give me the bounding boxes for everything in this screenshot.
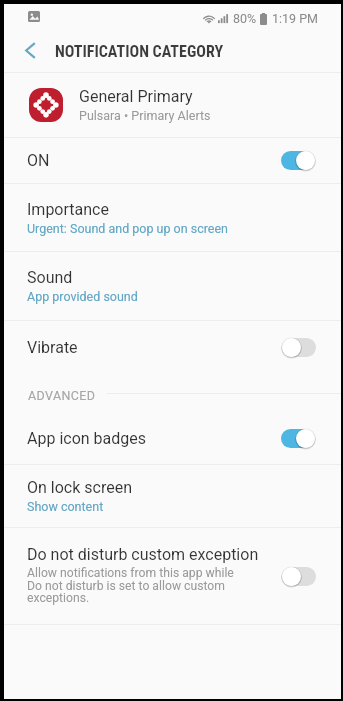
staticText: App icon badges <box>27 429 147 448</box>
staticText: Allow notifications from this app while … <box>27 566 234 605</box>
staticText: Sound <box>27 268 73 287</box>
button[interactable]: ON <box>4 138 341 183</box>
staticText: Pulsara • Primary Alerts <box>79 108 211 123</box>
staticText: Show content <box>27 499 104 514</box>
button[interactable]: Back <box>11 32 49 72</box>
button[interactable]: Vibrate <box>4 321 341 373</box>
staticText: 1:19 PM <box>272 11 319 26</box>
button[interactable]: General Primary <box>4 73 341 137</box>
staticText: Urgent: Sound and pop up on screen <box>27 221 229 236</box>
staticText: Importance <box>27 200 109 219</box>
staticText: 80% <box>233 11 257 26</box>
button[interactable]: Do not disturb custom exception <box>4 528 341 624</box>
staticText: ON <box>27 151 50 170</box>
staticText: App provided sound <box>27 289 138 304</box>
button[interactable]: App icon badges <box>4 413 341 464</box>
button[interactable]: On lock screen <box>4 465 341 527</box>
button[interactable]: Importance <box>4 184 341 251</box>
staticText: General Primary <box>79 87 193 106</box>
button[interactable]: Sound <box>4 252 341 320</box>
staticText: Vibrate <box>27 338 78 357</box>
staticText: Do not disturb custom exception <box>27 545 259 564</box>
staticText: ADVANCED <box>28 388 96 403</box>
staticText: NOTIFICATION CATEGORY <box>55 42 224 61</box>
staticText: On lock screen <box>27 478 132 497</box>
